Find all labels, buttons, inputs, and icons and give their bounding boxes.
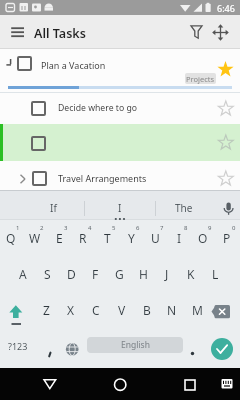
button[interactable] [0, 124, 240, 161]
button[interactable] [216, 133, 236, 153]
button[interactable] [187, 22, 206, 43]
button[interactable] [211, 338, 233, 360]
staticText: 0 [232, 224, 236, 232]
button[interactable]: Q [0, 221, 23, 255]
staticText: I [118, 201, 122, 215]
staticText: Decide where to go [58, 102, 138, 114]
staticText: S [44, 266, 51, 282]
staticText: O [198, 230, 208, 246]
staticText: 3 [64, 224, 68, 232]
staticText: B [143, 302, 151, 318]
button[interactable] [17, 56, 32, 71]
staticText: 1 [16, 224, 20, 232]
staticText: All Tasks [34, 25, 86, 42]
button[interactable] [178, 372, 202, 396]
staticText: C [92, 302, 100, 318]
button[interactable]: English [87, 337, 183, 353]
button[interactable]: A [11, 257, 35, 291]
button[interactable]: P [215, 221, 239, 255]
staticText: E [56, 230, 63, 246]
button[interactable] [0, 161, 240, 190]
staticText: D [67, 266, 76, 282]
button[interactable] [216, 99, 236, 119]
button[interactable] [184, 340, 202, 364]
staticText: The [175, 201, 193, 215]
staticText: A [19, 266, 27, 282]
staticText: X [67, 302, 75, 318]
button[interactable]: M [185, 293, 209, 327]
button[interactable]: Z [34, 293, 58, 327]
button[interactable]: U [143, 221, 167, 255]
button[interactable] [218, 198, 239, 219]
button[interactable] [215, 59, 236, 80]
staticText: W [29, 230, 41, 246]
staticText: J [165, 266, 169, 282]
staticText: R [79, 230, 87, 246]
staticText: If [50, 201, 57, 215]
button[interactable] [208, 296, 238, 326]
button[interactable] [2, 296, 30, 328]
button[interactable] [210, 22, 231, 43]
staticText: F [92, 266, 99, 282]
staticText: 6 [136, 224, 140, 232]
button[interactable] [108, 372, 132, 396]
staticText: P [223, 230, 231, 246]
staticText: M [192, 302, 203, 318]
staticText: T [104, 230, 111, 246]
button[interactable]: X [59, 293, 83, 327]
button[interactable]: Y [119, 221, 143, 255]
staticText: 7 [160, 224, 164, 232]
button[interactable]: ?123 [2, 331, 34, 361]
button[interactable]: E [47, 221, 71, 255]
staticText: L [212, 266, 219, 282]
staticText: N [167, 302, 177, 318]
staticText: Plan a Vacation [41, 59, 106, 71]
staticText: Travel Arrangements [58, 172, 147, 184]
button[interactable]: N [160, 293, 184, 327]
button[interactable]: If [25, 199, 81, 217]
staticText: English [121, 339, 150, 351]
staticText: Y [128, 230, 135, 246]
staticText: Projects [186, 74, 215, 84]
button[interactable] [31, 136, 46, 151]
button[interactable]: K [179, 257, 203, 291]
button[interactable]: W [23, 221, 47, 255]
button[interactable]: L [203, 257, 227, 291]
staticText: ?123 [8, 340, 28, 352]
staticText: G [115, 266, 124, 282]
button[interactable]: I [167, 221, 191, 255]
staticText: 9 [208, 224, 212, 232]
button[interactable] [38, 372, 62, 396]
button[interactable]: R [71, 221, 95, 255]
button[interactable] [38, 336, 62, 362]
button[interactable] [32, 171, 47, 186]
button[interactable]: S [35, 257, 59, 291]
button[interactable] [0, 93, 240, 124]
button[interactable]: C [84, 293, 108, 327]
staticText: 2 [40, 224, 44, 232]
button[interactable]: V [110, 293, 134, 327]
staticText: 6:46 [217, 2, 235, 14]
button[interactable] [31, 101, 46, 116]
button[interactable] [216, 169, 236, 189]
staticText: Q [6, 230, 16, 246]
button[interactable]: G [107, 257, 131, 291]
staticText: Z [43, 302, 50, 318]
button[interactable] [0, 49, 240, 92]
staticText: I [177, 230, 182, 246]
button[interactable] [6, 23, 30, 42]
button[interactable]: H [131, 257, 155, 291]
staticText: H [139, 266, 148, 282]
staticText: 4 [88, 224, 92, 232]
button[interactable]: D [59, 257, 83, 291]
button[interactable]: B [135, 293, 159, 327]
staticText: K [187, 266, 195, 282]
button[interactable] [61, 338, 84, 361]
button[interactable]: The [159, 199, 209, 217]
button[interactable]: J [155, 257, 179, 291]
button[interactable] [218, 376, 236, 392]
button[interactable]: O [191, 221, 215, 255]
button[interactable]: F [83, 257, 107, 291]
button[interactable]: T [95, 221, 119, 255]
button[interactable]: I [92, 199, 148, 217]
